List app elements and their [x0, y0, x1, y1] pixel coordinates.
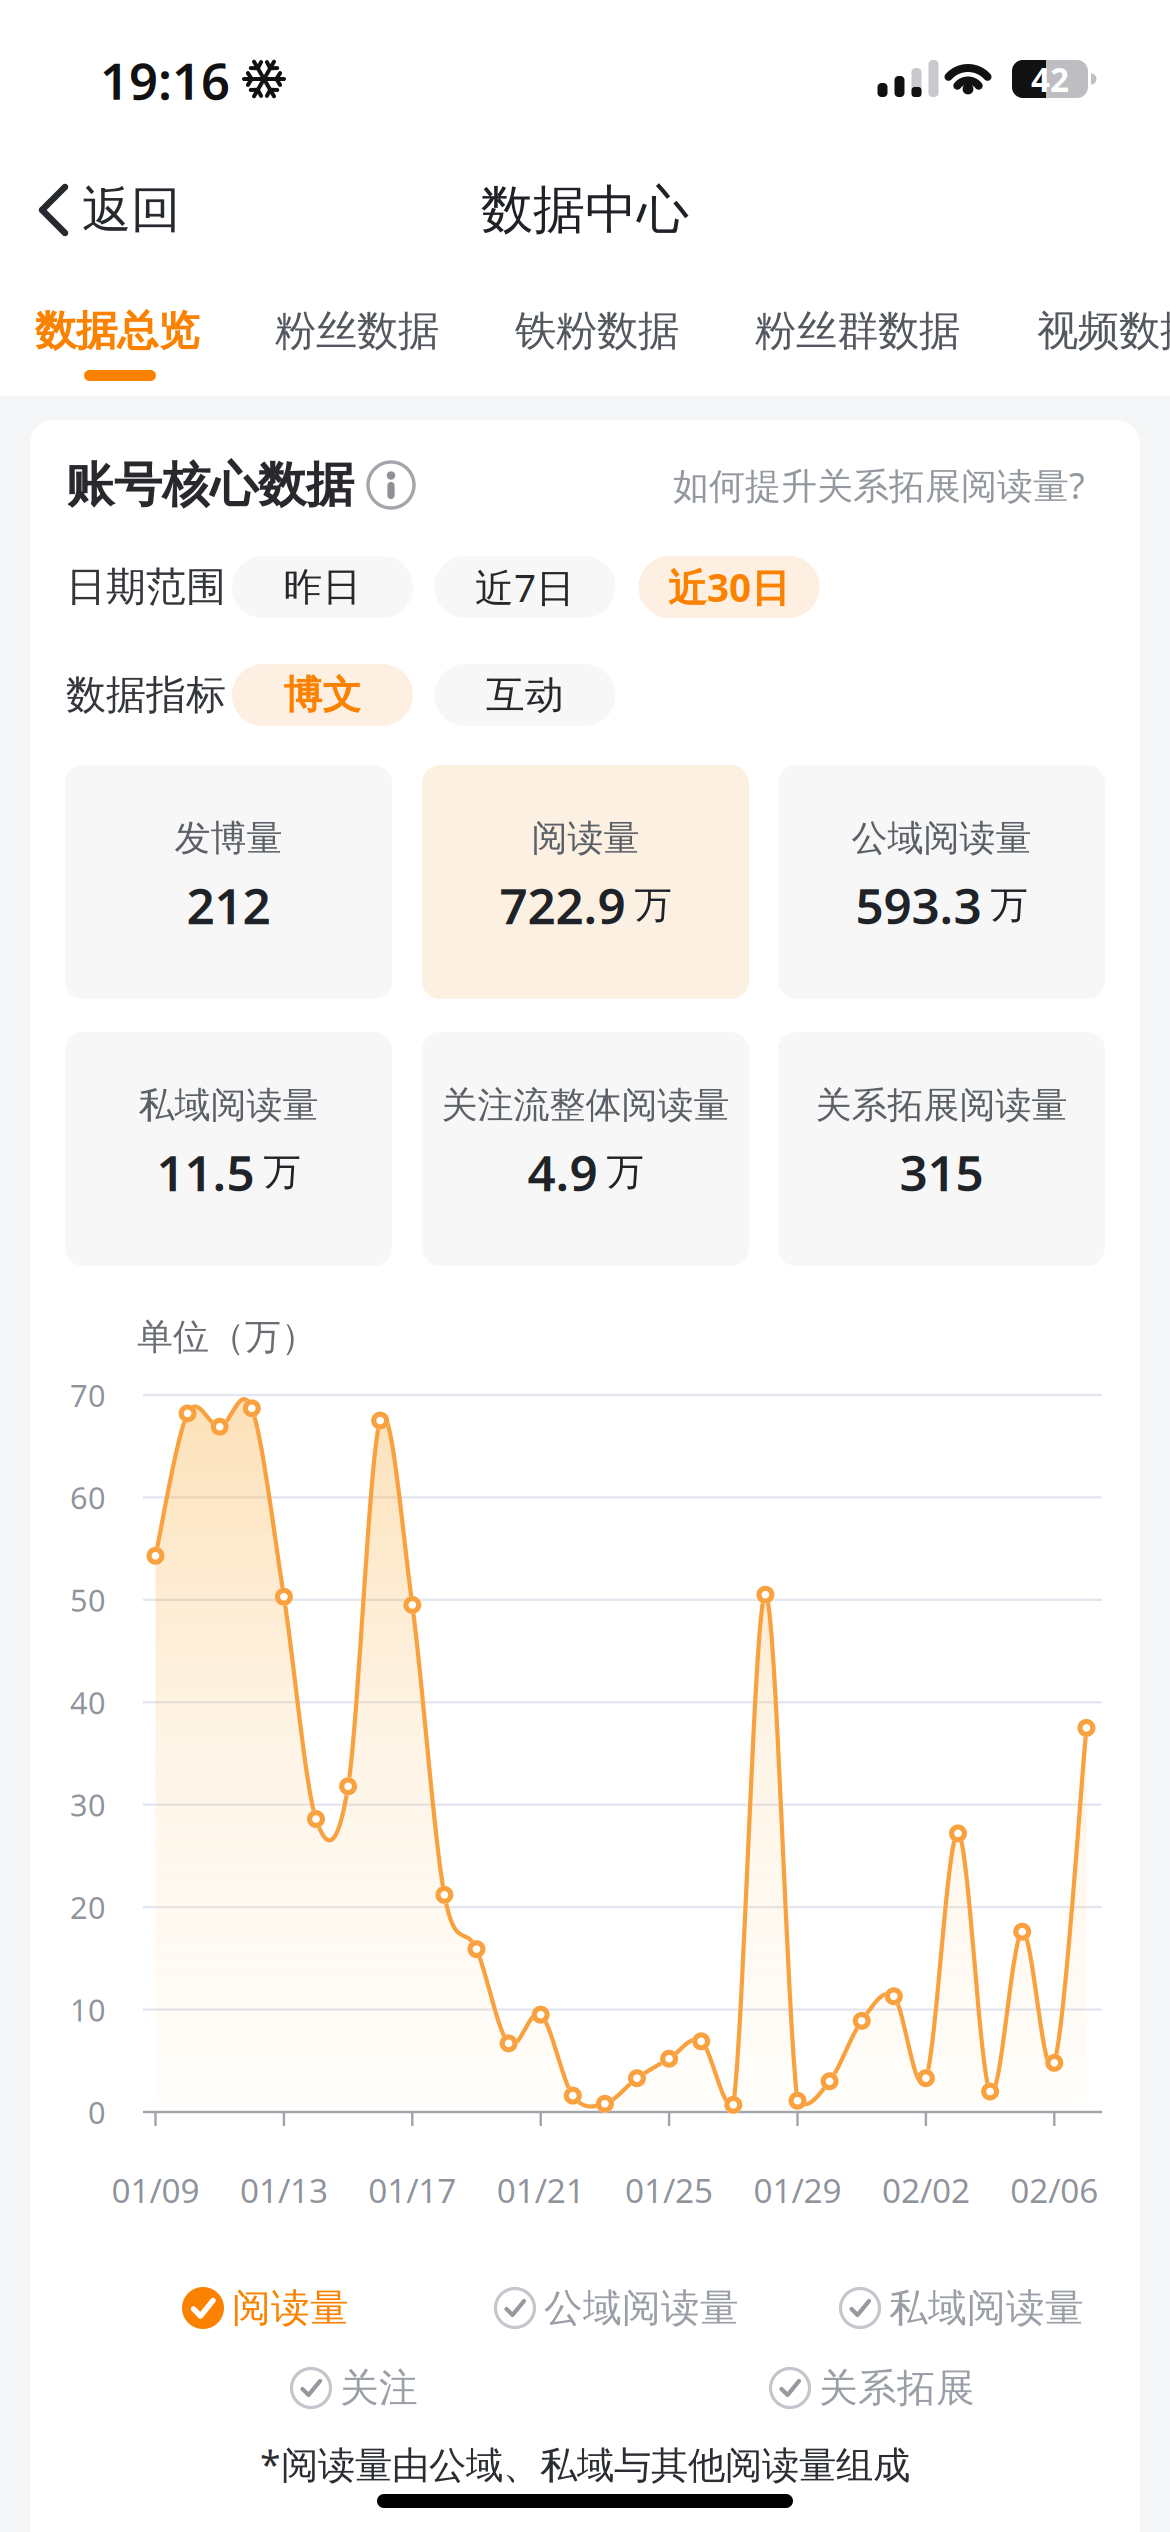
button[interactable]: 数据总览	[35, 306, 199, 356]
staticText: 视频数据	[1037, 306, 1170, 356]
staticText: 40	[70, 1682, 106, 1723]
staticText: 阅读量	[531, 816, 639, 860]
staticText: 日期范围	[66, 562, 226, 611]
staticText: 722.9	[499, 872, 625, 938]
button[interactable]: 博文	[232, 664, 413, 726]
staticText: 19:16	[100, 46, 230, 114]
staticText: 数据指标	[66, 670, 226, 719]
staticText: 30	[70, 1784, 106, 1825]
staticText: 关注	[340, 2364, 418, 2412]
staticText: 20	[70, 1887, 106, 1927]
staticText: 发博量	[174, 816, 282, 860]
button[interactable]: 近30日	[638, 556, 819, 618]
staticText: *阅读量由公域、私域与其他阅读量组成	[260, 2439, 910, 2489]
staticText: 01/17	[368, 2168, 456, 2212]
staticText: 593.3	[855, 872, 981, 938]
staticText: 返回	[82, 180, 180, 240]
staticText: 关注流整体阅读量	[441, 1083, 729, 1127]
button[interactable]: 公域阅读量	[494, 2284, 739, 2332]
staticText: 01/09	[111, 2168, 199, 2212]
staticText: 昨日	[283, 563, 361, 611]
staticText: 数据总览	[35, 306, 199, 356]
staticText: 数据中心	[481, 178, 689, 242]
button[interactable]: 视频数据	[1037, 306, 1170, 356]
staticText: 铁粉数据	[515, 306, 679, 356]
button[interactable]: 阅读量	[182, 2284, 349, 2332]
staticText: 10	[70, 1989, 106, 2030]
staticText: 账号核心数据	[66, 455, 354, 514]
staticText: 近30日	[668, 561, 790, 613]
staticText: 4.9	[527, 1139, 597, 1205]
button[interactable]: 如何提升关系拓展阅读量?	[673, 461, 1085, 509]
button[interactable]: 铁粉数据	[515, 306, 679, 356]
staticText: 单位（万）	[137, 1315, 317, 1359]
staticText: 互动	[486, 671, 564, 719]
staticText: 02/06	[1010, 2168, 1098, 2212]
staticText: 01/29	[753, 2168, 841, 2212]
staticText: 公域阅读量	[851, 816, 1031, 860]
staticText: 万	[990, 882, 1027, 928]
staticText: 315	[899, 1139, 983, 1205]
staticText: 如何提升关系拓展阅读量?	[673, 461, 1085, 509]
button[interactable]: 粉丝群数据	[755, 306, 960, 356]
staticText: 70	[70, 1375, 106, 1415]
staticText: 50	[70, 1579, 106, 1620]
staticText: 阅读量	[232, 2284, 349, 2332]
button[interactable]: 私域阅读量	[839, 2284, 1084, 2332]
button[interactable]: 互动	[434, 664, 615, 726]
staticText: 公域阅读量	[544, 2284, 739, 2332]
button[interactable]: 关系拓展	[769, 2364, 975, 2412]
staticText: 42	[1031, 57, 1069, 101]
staticText: 0	[88, 2092, 106, 2132]
staticText: 粉丝数据	[275, 306, 439, 356]
staticText: 粉丝群数据	[755, 306, 960, 356]
button[interactable]: 近7日	[434, 556, 615, 618]
staticText: 60	[70, 1477, 106, 1518]
staticText: 212	[186, 872, 270, 938]
staticText: 万	[606, 1149, 643, 1195]
staticText: 11.5	[156, 1139, 254, 1205]
staticText: 近7日	[475, 561, 575, 613]
staticText: 关系拓展	[819, 2364, 975, 2412]
staticText: 01/25	[625, 2168, 713, 2212]
button[interactable]: 说明	[366, 460, 416, 510]
button[interactable]: 粉丝数据	[275, 306, 439, 356]
button[interactable]: 昨日	[232, 556, 413, 618]
staticText: 万	[263, 1149, 300, 1195]
staticText: 关系拓展阅读量	[815, 1083, 1067, 1127]
staticText: 02/02	[882, 2168, 970, 2212]
staticText: 私域阅读量	[889, 2284, 1084, 2332]
staticText: 01/13	[240, 2168, 328, 2212]
staticText: 01/21	[497, 2168, 585, 2212]
staticText: 博文	[283, 671, 361, 719]
button[interactable]: 返回	[38, 180, 180, 240]
staticText: 万	[634, 882, 671, 928]
button[interactable]: 关注	[290, 2364, 418, 2412]
staticText: 私域阅读量	[138, 1083, 318, 1127]
